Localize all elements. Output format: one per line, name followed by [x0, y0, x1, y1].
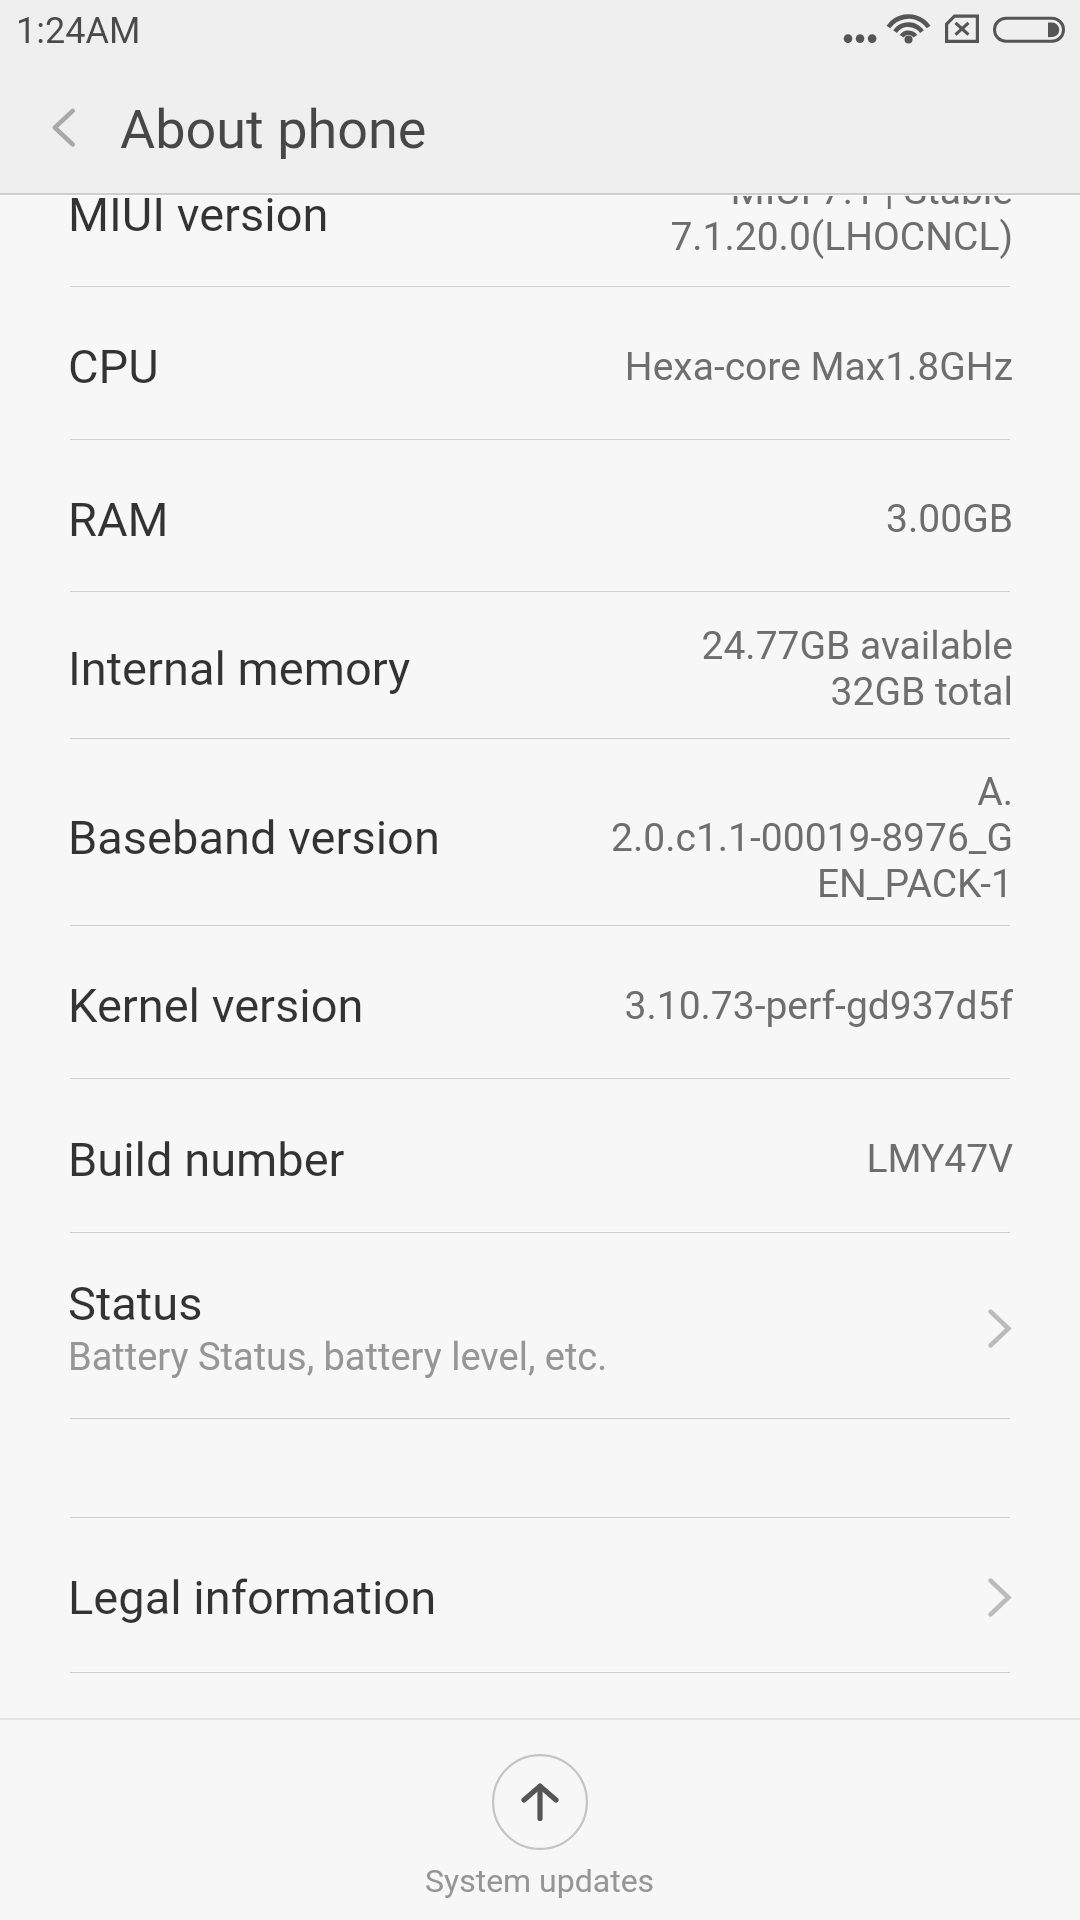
staticText: Battery Status, battery level, etc.	[68, 1335, 608, 1380]
staticText: 3.00GB	[886, 496, 1013, 542]
button[interactable]: Kernel version	[0, 926, 1080, 1077]
button[interactable]: Build number	[0, 1079, 1080, 1231]
button[interactable]: Baseband version	[0, 739, 1080, 924]
staticText: About phone	[120, 98, 427, 161]
staticText: EN_PACK-1	[816, 861, 1013, 907]
staticText: Kernel version	[68, 978, 624, 1033]
staticText: 24.77GB available	[701, 623, 1013, 669]
button[interactable]: MIUI version	[0, 0, 1080, 285]
other: System updates	[492, 1754, 588, 1850]
staticText: 32GB total	[830, 669, 1013, 715]
staticText: MIUI 7.1 | Stable	[730, 168, 1013, 214]
button[interactable]: Legal information	[0, 1518, 1080, 1671]
button[interactable]: RAM	[0, 440, 1080, 590]
staticText: MIUI version	[68, 187, 670, 242]
staticText: 2.0.c1.1-00019-8976_G	[611, 815, 1013, 861]
button[interactable]: Back	[0, 66, 120, 193]
staticText: LMY47V	[866, 1136, 1013, 1182]
staticText: Internal memory	[68, 641, 701, 696]
staticText: CPU	[68, 339, 624, 394]
staticText: A.	[977, 769, 1013, 815]
staticText: Build number	[68, 1132, 866, 1187]
staticText: 1:24AM	[16, 10, 141, 52]
staticText: Status	[68, 1276, 203, 1331]
staticText: Baseband version	[68, 810, 611, 865]
button[interactable]: Status	[0, 1233, 1080, 1417]
button[interactable]: Internal memory	[0, 592, 1080, 737]
staticText: Legal information	[68, 1570, 437, 1625]
staticText: RAM	[68, 492, 886, 547]
button[interactable]: System updates	[425, 1754, 655, 1900]
staticText: 7.1.20.0(LHOCNCL)	[670, 214, 1013, 260]
staticText: Hexa-core Max1.8GHz	[624, 344, 1013, 390]
staticText: 3.10.73-perf-gd937d5f	[624, 983, 1013, 1029]
button[interactable]: CPU	[0, 287, 1080, 438]
staticText: System updates	[425, 1862, 655, 1900]
